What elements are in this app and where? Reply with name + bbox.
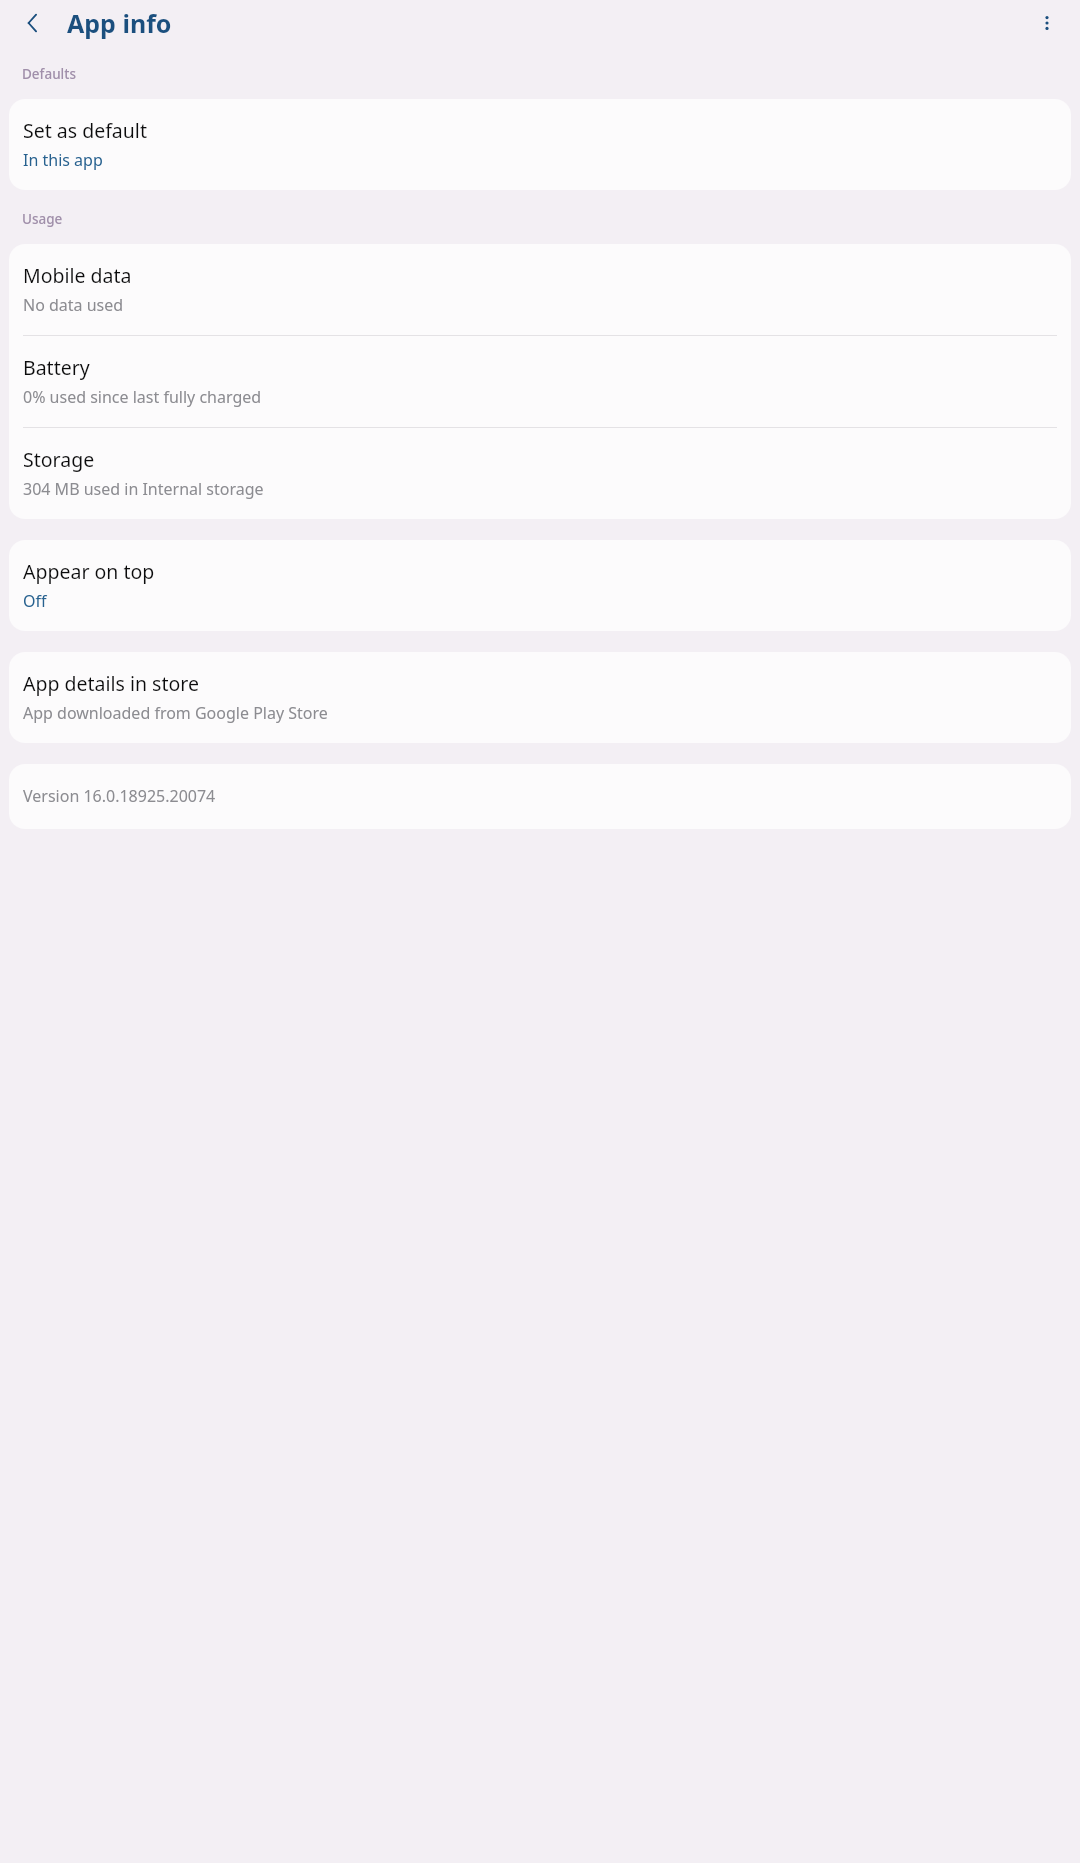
staticText: App details in store	[23, 670, 199, 697]
staticText: Battery	[23, 354, 90, 381]
button[interactable]: Battery	[9, 336, 1071, 427]
button[interactable]: More options	[1026, 2, 1068, 44]
staticText: In this app	[23, 149, 103, 171]
staticText: Mobile data	[23, 262, 132, 289]
button[interactable]: Storage	[9, 428, 1071, 519]
staticText: Storage	[23, 446, 95, 473]
staticText: 0% used since last fully charged	[23, 386, 262, 408]
staticText: Set as default	[23, 117, 147, 144]
staticText: Defaults	[22, 65, 76, 83]
staticText: 304 MB used in Internal storage	[23, 478, 264, 500]
button[interactable]: Mobile data	[9, 244, 1071, 335]
button[interactable]: Appear on top	[9, 540, 1071, 631]
button[interactable]: Navigate up	[12, 2, 54, 44]
button[interactable]: App details in store	[9, 652, 1071, 743]
staticText: Version 16.0.18925.20074	[23, 785, 216, 807]
staticText: Appear on top	[23, 558, 155, 585]
staticText: App downloaded from Google Play Store	[23, 702, 328, 724]
button[interactable]: Version 16.0.18925.20074	[9, 764, 1071, 829]
staticText: No data used	[23, 294, 124, 316]
button[interactable]: Set as default	[9, 99, 1071, 190]
staticText: App info	[67, 6, 172, 40]
staticText: Off	[23, 590, 47, 612]
staticText: Usage	[22, 210, 63, 228]
